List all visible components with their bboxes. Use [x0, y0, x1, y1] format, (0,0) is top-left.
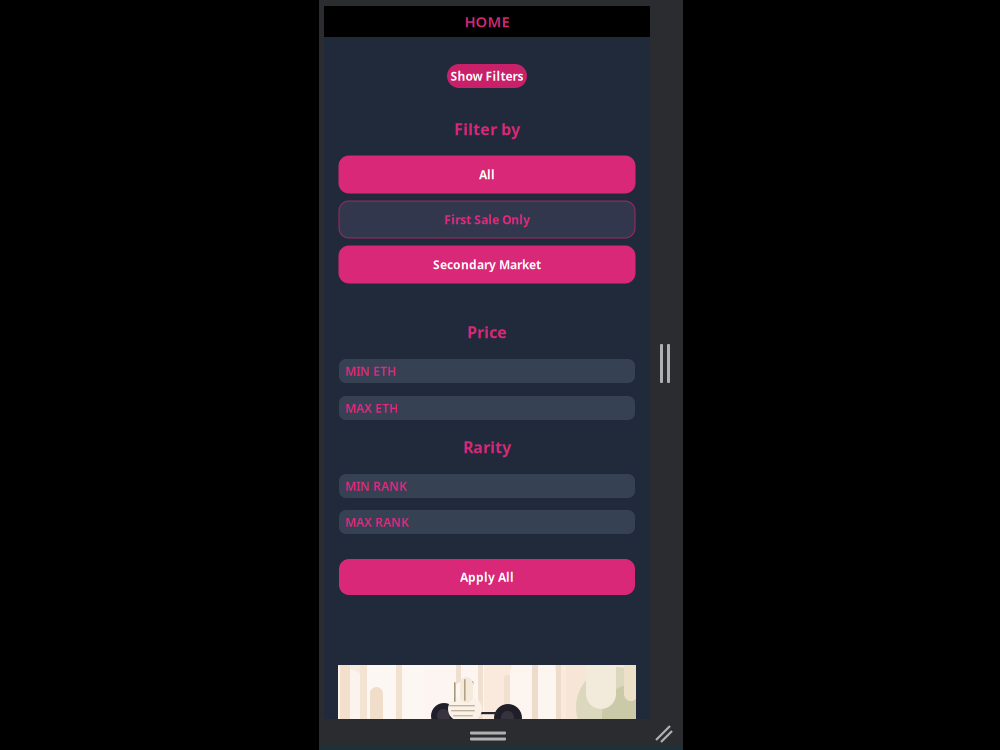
button[interactable]: MIN ETH: [339, 359, 635, 383]
staticText: First Sale Only: [444, 211, 530, 227]
staticText: Secondary Market: [433, 256, 541, 272]
button[interactable]: Resize window: [654, 724, 676, 744]
staticText: Filter by: [454, 118, 520, 140]
button[interactable]: MAX ETH: [339, 396, 635, 420]
button[interactable]: Show Filters: [447, 64, 527, 88]
staticText: HOME: [464, 12, 509, 31]
staticText: All: [479, 166, 495, 182]
staticText: MAX ETH: [345, 400, 398, 416]
button[interactable]: NFT listing: [338, 665, 636, 750]
button[interactable]: MIN RANK: [339, 474, 635, 498]
button[interactable]: Drag to resize width: [654, 338, 676, 389]
staticText: Price: [467, 321, 507, 343]
staticText: Show Filters: [450, 68, 523, 84]
button[interactable]: Apply All: [339, 559, 635, 595]
staticText: MIN ETH: [345, 363, 396, 379]
button[interactable]: MAX RANK: [339, 510, 635, 534]
button[interactable]: All: [339, 156, 635, 193]
button[interactable]: Secondary Market: [339, 246, 635, 283]
staticText: MAX RANK: [345, 514, 409, 530]
button[interactable]: Drag to resize: [464, 727, 512, 745]
button[interactable]: First Sale Only: [339, 201, 635, 238]
staticText: MIN RANK: [345, 478, 407, 494]
staticText: Rarity: [463, 436, 511, 458]
staticText: Apply All: [460, 569, 514, 585]
